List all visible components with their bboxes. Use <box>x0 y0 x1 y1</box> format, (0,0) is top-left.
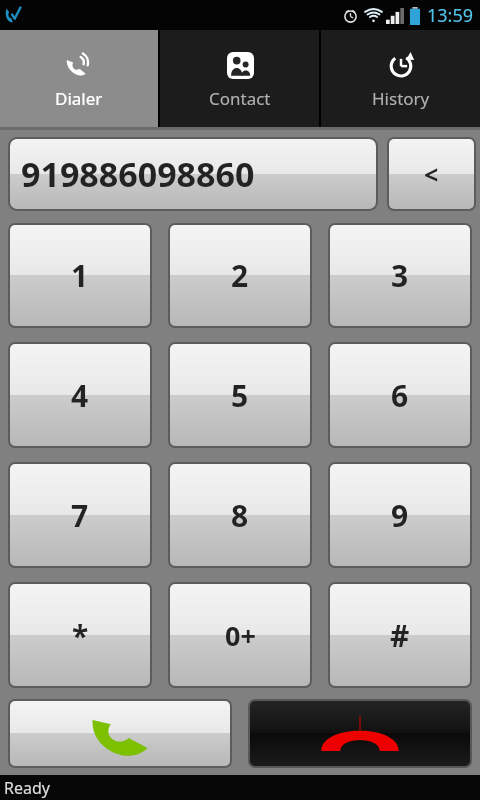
button[interactable]: 3 <box>328 223 472 328</box>
button[interactable]: 4 <box>8 342 152 448</box>
button[interactable]: 8 <box>168 462 312 568</box>
button[interactable]: 0+ <box>168 582 312 688</box>
staticText: 3 <box>391 255 409 296</box>
staticText: Dialer <box>55 87 103 110</box>
button[interactable]: 2 <box>168 223 312 328</box>
button[interactable]: 1 <box>8 223 152 328</box>
staticText: < <box>424 157 439 191</box>
staticText: 13:59 <box>427 3 474 28</box>
button[interactable]: Backspace <box>387 137 476 211</box>
button[interactable]: 5 <box>168 342 312 448</box>
staticText: 2 <box>231 255 249 296</box>
staticText: 6 <box>391 375 409 416</box>
button[interactable]: Contact <box>160 30 319 127</box>
button[interactable]: 9 <box>328 462 472 568</box>
staticText: 5 <box>231 375 249 416</box>
staticText: 4 <box>71 375 89 416</box>
staticText: 0+ <box>225 617 256 654</box>
button[interactable]: 7 <box>8 462 152 568</box>
button[interactable]: End call <box>248 699 472 768</box>
staticText: * <box>72 615 89 656</box>
staticText: History <box>372 87 430 110</box>
staticText: 9 <box>391 495 409 536</box>
button[interactable]: 6 <box>328 342 472 448</box>
button[interactable]: History <box>321 30 480 127</box>
staticText: 8 <box>231 495 249 536</box>
staticText: 1 <box>71 255 89 296</box>
staticText: Contact <box>209 87 271 110</box>
button[interactable]: # <box>328 582 472 688</box>
button[interactable]: 919886098860 <box>8 137 378 211</box>
staticText: # <box>390 615 410 656</box>
button[interactable]: Dialer <box>0 30 158 127</box>
button[interactable]: Call <box>8 699 232 768</box>
staticText: 7 <box>71 495 89 536</box>
staticText: 919886098860 <box>21 151 255 197</box>
staticText: Ready <box>4 777 50 799</box>
button[interactable]: * <box>8 582 152 688</box>
